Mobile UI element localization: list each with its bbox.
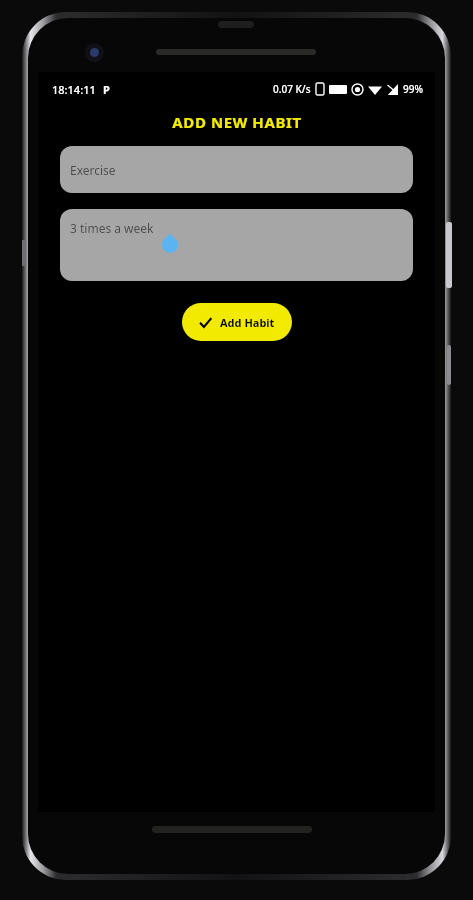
staticText: 18:14:11	[52, 82, 96, 97]
button[interactable]: 3 times a week	[60, 209, 413, 281]
staticText: 0.07 K/s	[273, 82, 311, 96]
staticText: 99%	[403, 82, 423, 96]
button[interactable]: Exercise	[60, 146, 413, 193]
staticText: 3 times a week	[70, 220, 154, 236]
staticText: Exercise	[70, 162, 116, 178]
staticText: Add Habit	[220, 315, 275, 330]
staticText: P	[103, 82, 110, 97]
staticText: ADD NEW HABIT	[172, 112, 302, 132]
button[interactable]: Add Habit	[182, 303, 292, 341]
